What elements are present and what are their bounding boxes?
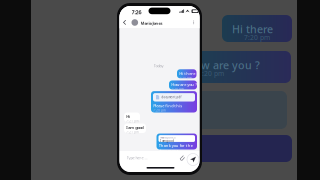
staticText: 7:21 pm <box>126 119 138 123</box>
staticText: document.pdf <box>161 95 181 99</box>
staticText: Thank you for the document <box>159 143 193 153</box>
staticText: 7:21 pm <box>126 130 138 134</box>
staticText: Today <box>153 63 163 68</box>
staticText: Hi there <box>232 22 273 36</box>
staticText: 7:20 pm <box>198 69 224 78</box>
staticText: Type here ... <box>126 155 147 160</box>
staticText: How are you ? <box>171 82 197 87</box>
staticText: 7:20 pm <box>179 76 191 80</box>
button[interactable]: Send <box>186 153 199 166</box>
button[interactable]: More <box>191 19 196 26</box>
staticText: Maria Jones <box>140 20 162 26</box>
staticText: I am good <box>160 139 174 143</box>
staticText: How are you ? <box>187 58 260 72</box>
staticText: 7:20 pm <box>153 109 165 112</box>
staticText: Hi <box>126 114 130 119</box>
button[interactable]: Attach file <box>177 153 187 163</box>
staticText: Please find this <box>153 103 182 108</box>
staticText: 7:20 pm <box>244 33 270 42</box>
staticText: 7:20 pm <box>171 87 183 91</box>
button[interactable]: Back <box>122 19 128 27</box>
staticText: I am good <box>126 125 143 130</box>
staticText: Hi there <box>179 71 195 76</box>
staticText: 7:26 <box>131 9 141 16</box>
staticText: Maria Jones <box>160 136 175 139</box>
